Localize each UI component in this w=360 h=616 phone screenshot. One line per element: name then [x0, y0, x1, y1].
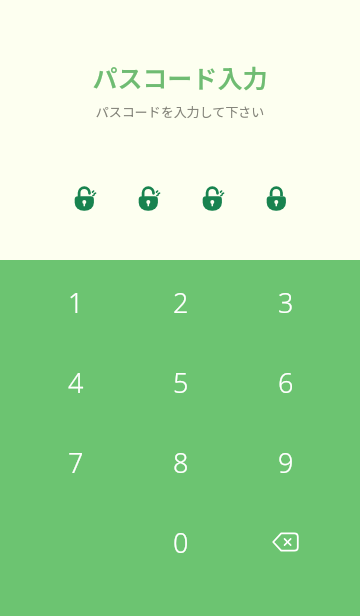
staticText: 3 — [278, 284, 294, 321]
button[interactable]: 8 — [128, 422, 233, 502]
button[interactable]: 7 — [23, 422, 128, 502]
button[interactable]: 3 — [233, 262, 338, 342]
staticText: 4 — [68, 364, 84, 401]
button[interactable]: 2 — [128, 262, 233, 342]
staticText: 2 — [173, 284, 189, 321]
staticText: 7 — [68, 444, 84, 481]
staticText: 1 — [68, 284, 84, 321]
staticText: 5 — [173, 364, 189, 401]
button[interactable]: 6 — [233, 342, 338, 422]
staticText: 0 — [173, 524, 189, 561]
button[interactable]: 9 — [233, 422, 338, 502]
staticText: 6 — [278, 364, 294, 401]
button[interactable]: 4 — [23, 342, 128, 422]
staticText: パスコード入力 — [0, 59, 360, 95]
button[interactable]: 5 — [128, 342, 233, 422]
button[interactable]: 1 — [23, 262, 128, 342]
button[interactable]: Delete — [233, 502, 338, 582]
staticText: 9 — [278, 444, 294, 481]
staticText: パスコードを入力して下さい — [0, 102, 360, 121]
staticText: 8 — [173, 444, 189, 481]
button[interactable]: 0 — [128, 502, 233, 582]
